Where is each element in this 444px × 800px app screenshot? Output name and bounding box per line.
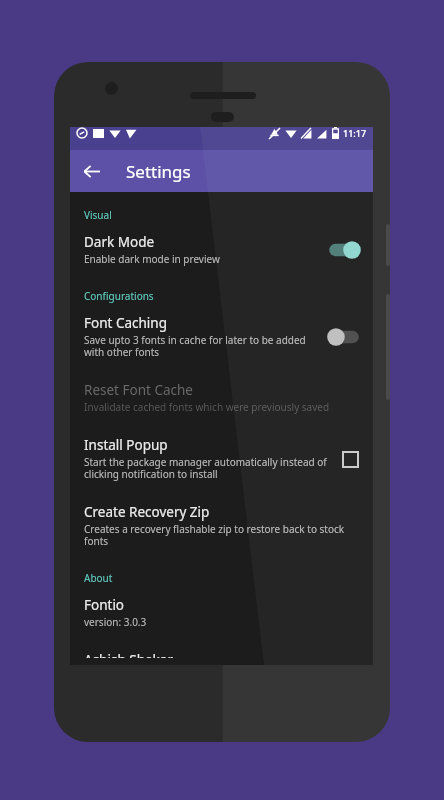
button[interactable]: Fontio (70, 589, 373, 636)
staticText: Invalidate cached fonts which were previ… (84, 400, 330, 414)
staticText: About (84, 571, 113, 585)
button[interactable]: Toggle (325, 239, 363, 261)
staticText: 11:17 (343, 127, 367, 139)
staticText: Configurations (84, 289, 154, 303)
staticText: Creates a recovery flashable zip to rest… (84, 522, 355, 548)
staticText: Ashish Shekar (84, 651, 173, 658)
staticText: Font Caching (84, 314, 167, 332)
button[interactable]: Dark Mode (70, 226, 373, 273)
button[interactable]: Ashish Shekar (70, 644, 373, 665)
button[interactable]: Back (70, 150, 112, 192)
staticText: Save upto 3 fonts in cache for later to … (84, 333, 317, 359)
button[interactable]: Toggle (325, 326, 363, 348)
staticText: Settings (126, 160, 191, 183)
staticText: version: 3.0.3 (84, 615, 147, 629)
button[interactable]: Install Popup checkbox (337, 446, 363, 472)
staticText: Start the package manager automatically … (84, 455, 329, 481)
staticText: Install Popup (84, 436, 168, 454)
staticText: Dark Mode (84, 233, 155, 251)
staticText: Reset Font Cache (84, 381, 193, 399)
button[interactable]: Font Caching (70, 307, 373, 366)
button[interactable]: Install Popup (70, 429, 373, 488)
button[interactable]: Create Recovery Zip (70, 496, 373, 555)
staticText: Enable dark mode in preview (84, 252, 220, 266)
button[interactable]: Reset Font Cache (70, 374, 373, 421)
staticText: Visual (84, 208, 112, 222)
staticText: Fontio (84, 596, 125, 614)
staticText: Create Recovery Zip (84, 503, 210, 521)
